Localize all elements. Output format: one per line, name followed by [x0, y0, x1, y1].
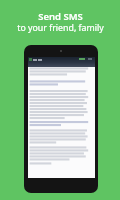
staticText: Send SMS	[38, 10, 83, 23]
staticText: to your friend, family	[17, 22, 104, 34]
button[interactable]: App bar	[28, 57, 95, 67]
